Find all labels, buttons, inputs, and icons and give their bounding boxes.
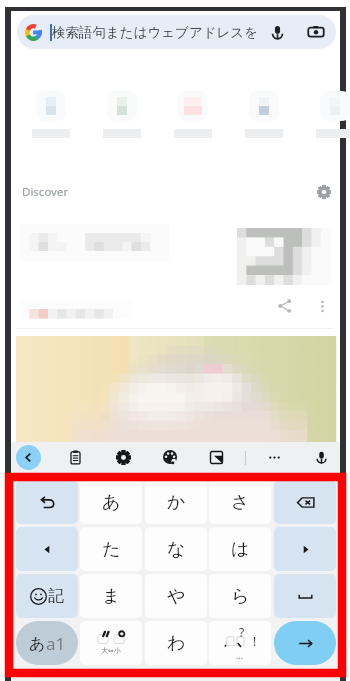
button[interactable]: あ <box>16 621 78 665</box>
button[interactable]: さ <box>209 480 271 524</box>
button[interactable]: More <box>262 445 287 470</box>
button[interactable]: Keyboard settings <box>111 445 136 470</box>
staticText: Discover <box>22 184 69 200</box>
staticText: 大⇔小 <box>101 646 121 655</box>
button[interactable]: あ <box>80 480 142 524</box>
button[interactable]: わ <box>145 621 207 665</box>
staticText: ? <box>239 624 245 640</box>
other: Enter <box>295 633 316 654</box>
staticText: a1 <box>46 632 66 655</box>
staticText: わ <box>167 632 186 655</box>
button[interactable]: Backspace <box>274 480 336 524</box>
button[interactable]: Cursor right <box>274 527 336 571</box>
staticText: 検索語句またはウェブアドレスを <box>52 24 258 41</box>
other: Space <box>295 586 316 607</box>
button[interactable]: ら <box>209 574 271 618</box>
other: Cursor right <box>298 542 313 557</box>
staticText: ま <box>102 585 121 608</box>
button[interactable] <box>313 91 350 147</box>
button[interactable]: Undo <box>16 480 78 524</box>
staticText: 記 <box>48 586 64 606</box>
button[interactable]: か <box>145 480 207 524</box>
other: Backspace <box>295 492 316 513</box>
button[interactable]: や <box>145 574 207 618</box>
staticText: あ <box>29 634 46 654</box>
staticText: ら <box>231 585 250 608</box>
button[interactable] <box>100 91 144 147</box>
button[interactable]: Cursor left <box>16 527 78 571</box>
button[interactable]: Stickers <box>204 445 229 470</box>
button[interactable]: た <box>80 527 142 571</box>
button[interactable]: Discover settings <box>313 181 335 203</box>
staticText: ! <box>253 633 257 649</box>
button[interactable]: 大⇔小 <box>80 621 142 665</box>
button[interactable] <box>29 91 73 147</box>
button[interactable] <box>242 91 286 147</box>
button[interactable]: 検索語句またはウェブアドレスを <box>17 15 336 49</box>
staticText: な <box>167 538 186 561</box>
button[interactable]: な <box>145 527 207 571</box>
staticText: … <box>236 649 244 661</box>
button[interactable]: ? <box>209 621 271 665</box>
staticText: は <box>231 538 250 561</box>
other: Cursor left <box>40 542 55 557</box>
staticText: や <box>167 585 186 608</box>
button[interactable]: Share <box>273 294 297 318</box>
button[interactable]: ま <box>80 574 142 618</box>
staticText: た <box>102 538 121 561</box>
button[interactable]: は <box>209 527 271 571</box>
other: Undo <box>38 493 57 512</box>
button[interactable]: Space <box>274 574 336 618</box>
staticText: さ <box>231 491 250 514</box>
staticText: あ <box>102 491 121 514</box>
button[interactable]: More options <box>310 294 334 318</box>
staticText: か <box>167 491 186 514</box>
button[interactable]: Voice search <box>266 21 288 43</box>
button[interactable]: 記 <box>16 574 78 618</box>
button[interactable] <box>171 91 215 147</box>
button[interactable]: Google Lens <box>305 21 327 43</box>
button[interactable]: Back <box>16 445 41 470</box>
button[interactable]: Clipboard <box>63 445 88 470</box>
button[interactable]: Enter <box>274 621 336 665</box>
button[interactable]: Voice input <box>309 445 334 470</box>
button[interactable]: Themes <box>158 445 183 470</box>
